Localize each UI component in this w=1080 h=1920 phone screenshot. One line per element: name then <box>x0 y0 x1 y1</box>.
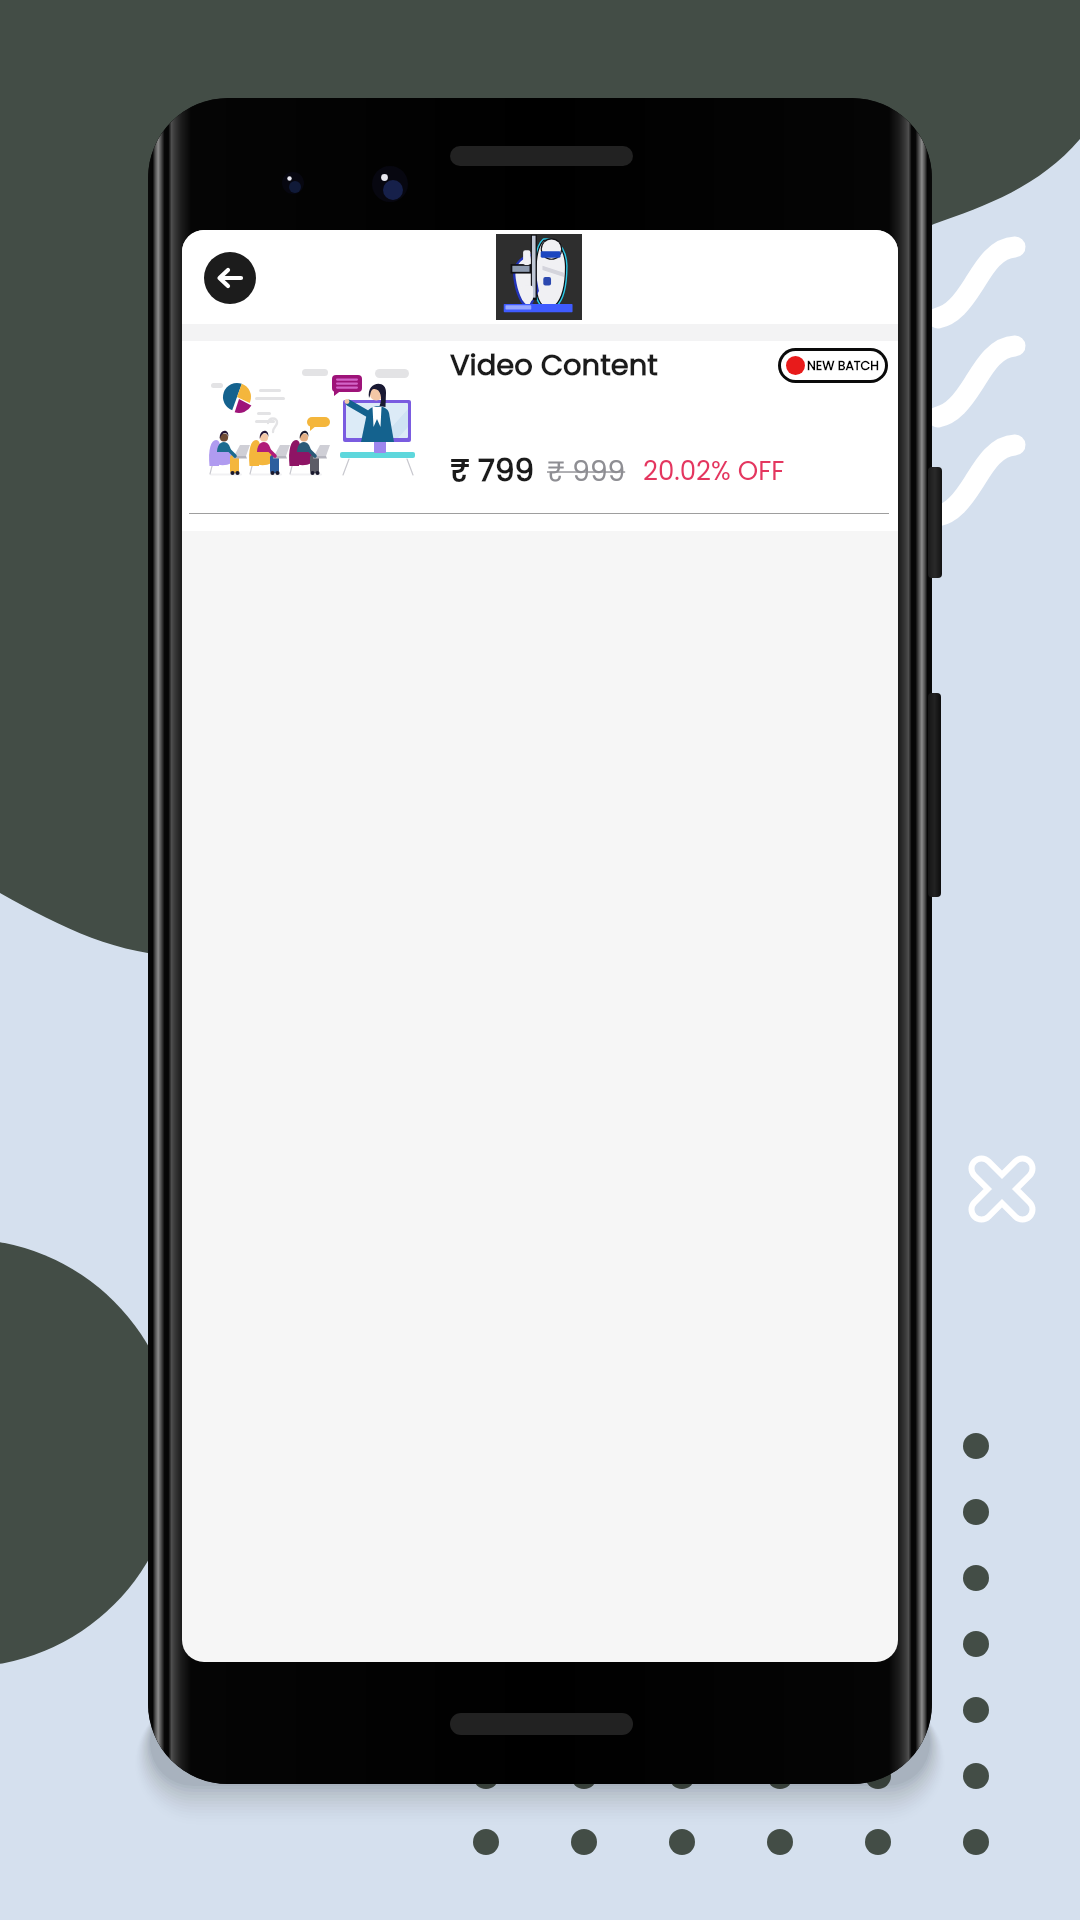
staticText: ₹ 799 <box>450 448 534 491</box>
button[interactable]: NEW BATCH <box>778 348 888 383</box>
button[interactable]: Army Dost logo <box>496 234 582 320</box>
staticText: Video Content <box>450 345 658 386</box>
staticText: ₹ 999 <box>547 452 626 491</box>
staticText: 20.02% OFF <box>643 453 785 489</box>
button[interactable]: Video Content <box>182 341 898 531</box>
staticText: NEW BATCH <box>807 357 879 374</box>
button[interactable]: Back <box>204 252 256 304</box>
